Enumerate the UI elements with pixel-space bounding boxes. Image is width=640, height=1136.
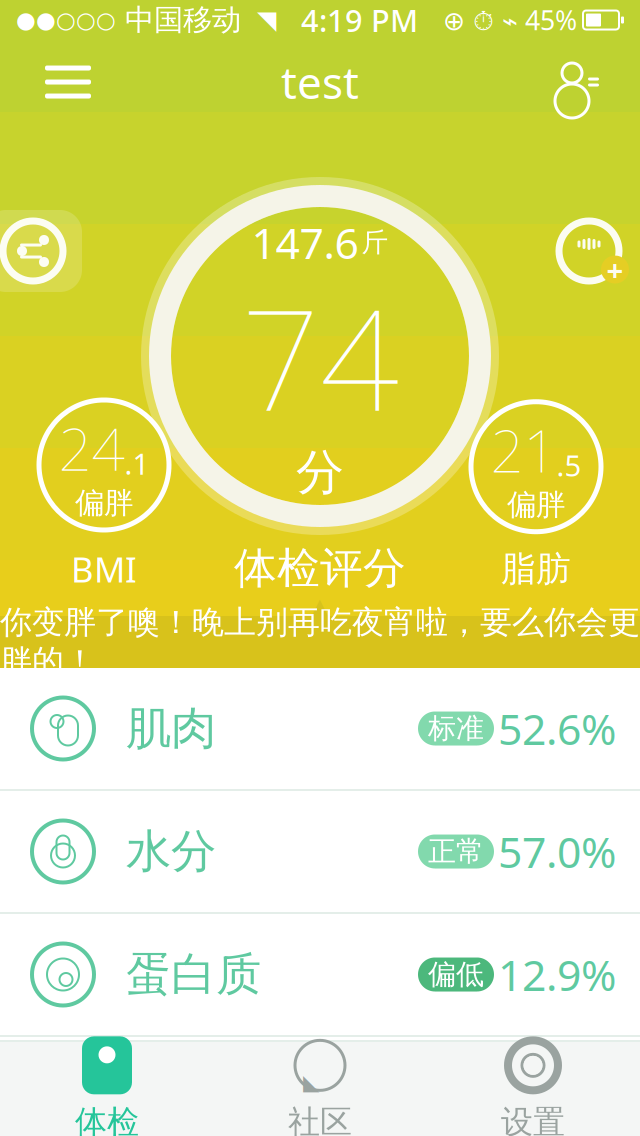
staticText: 52.6% bbox=[498, 700, 616, 757]
button[interactable]: 体检 bbox=[0, 1042, 213, 1136]
staticText: 24 bbox=[58, 409, 124, 487]
staticText: test bbox=[281, 53, 359, 111]
staticText: 57.0% bbox=[498, 823, 616, 880]
staticText: 中国移动 bbox=[116, 2, 241, 38]
button[interactable]: 蛋白质 bbox=[0, 914, 640, 1035]
staticText: 偏胖 bbox=[75, 485, 133, 521]
staticText: 12.9% bbox=[498, 946, 616, 1003]
staticText: BMI bbox=[71, 546, 137, 592]
staticText: 体检评分 bbox=[234, 542, 406, 594]
staticText: 你变胖了噢！晚上别再吃夜宵啦，要么你会更胖的！ bbox=[0, 603, 640, 681]
staticText: 体检 bbox=[75, 1102, 139, 1136]
staticText: 偏胖 bbox=[507, 487, 565, 523]
button[interactable]: ◣ bbox=[213, 1042, 426, 1136]
staticText: 设置 bbox=[501, 1102, 565, 1136]
button[interactable]: 水分 bbox=[0, 791, 640, 912]
staticText: 斤 bbox=[361, 226, 388, 259]
staticText: ◣ bbox=[303, 1070, 319, 1094]
staticText: 蛋白质 bbox=[126, 947, 261, 1002]
staticText: 水分 bbox=[126, 824, 216, 879]
button[interactable]: 设置 bbox=[426, 1042, 639, 1136]
staticText: + bbox=[606, 250, 623, 289]
staticText: ◥ bbox=[241, 6, 276, 34]
staticText: 偏低 bbox=[428, 957, 484, 992]
staticText: 脂肪 bbox=[501, 548, 571, 590]
staticText: ▲ bbox=[308, 592, 331, 625]
staticText: 正常 bbox=[428, 834, 484, 869]
button[interactable]: 添加测量 bbox=[544, 210, 640, 292]
staticText: .1 bbox=[124, 444, 149, 483]
button[interactable]: 肌肉 bbox=[0, 668, 640, 789]
staticText: ●●○○○ bbox=[16, 7, 116, 33]
staticText: ⊕ ⏱ ⌁ 45% bbox=[443, 2, 577, 38]
staticText: 标准 bbox=[428, 711, 484, 746]
button[interactable]: 菜单 bbox=[22, 40, 114, 124]
staticText: 21 bbox=[490, 411, 556, 489]
staticText: .5 bbox=[556, 446, 581, 485]
button[interactable]: 好友 bbox=[526, 40, 618, 124]
staticText: 4:19 PM bbox=[301, 0, 418, 40]
button[interactable]: 分享 bbox=[0, 210, 82, 292]
staticText: 147.6 bbox=[251, 214, 358, 271]
staticText: 肌肉 bbox=[126, 701, 216, 756]
staticText: 社区 bbox=[288, 1102, 352, 1136]
staticText: 分 bbox=[296, 443, 344, 502]
staticText: 74 bbox=[241, 265, 399, 449]
